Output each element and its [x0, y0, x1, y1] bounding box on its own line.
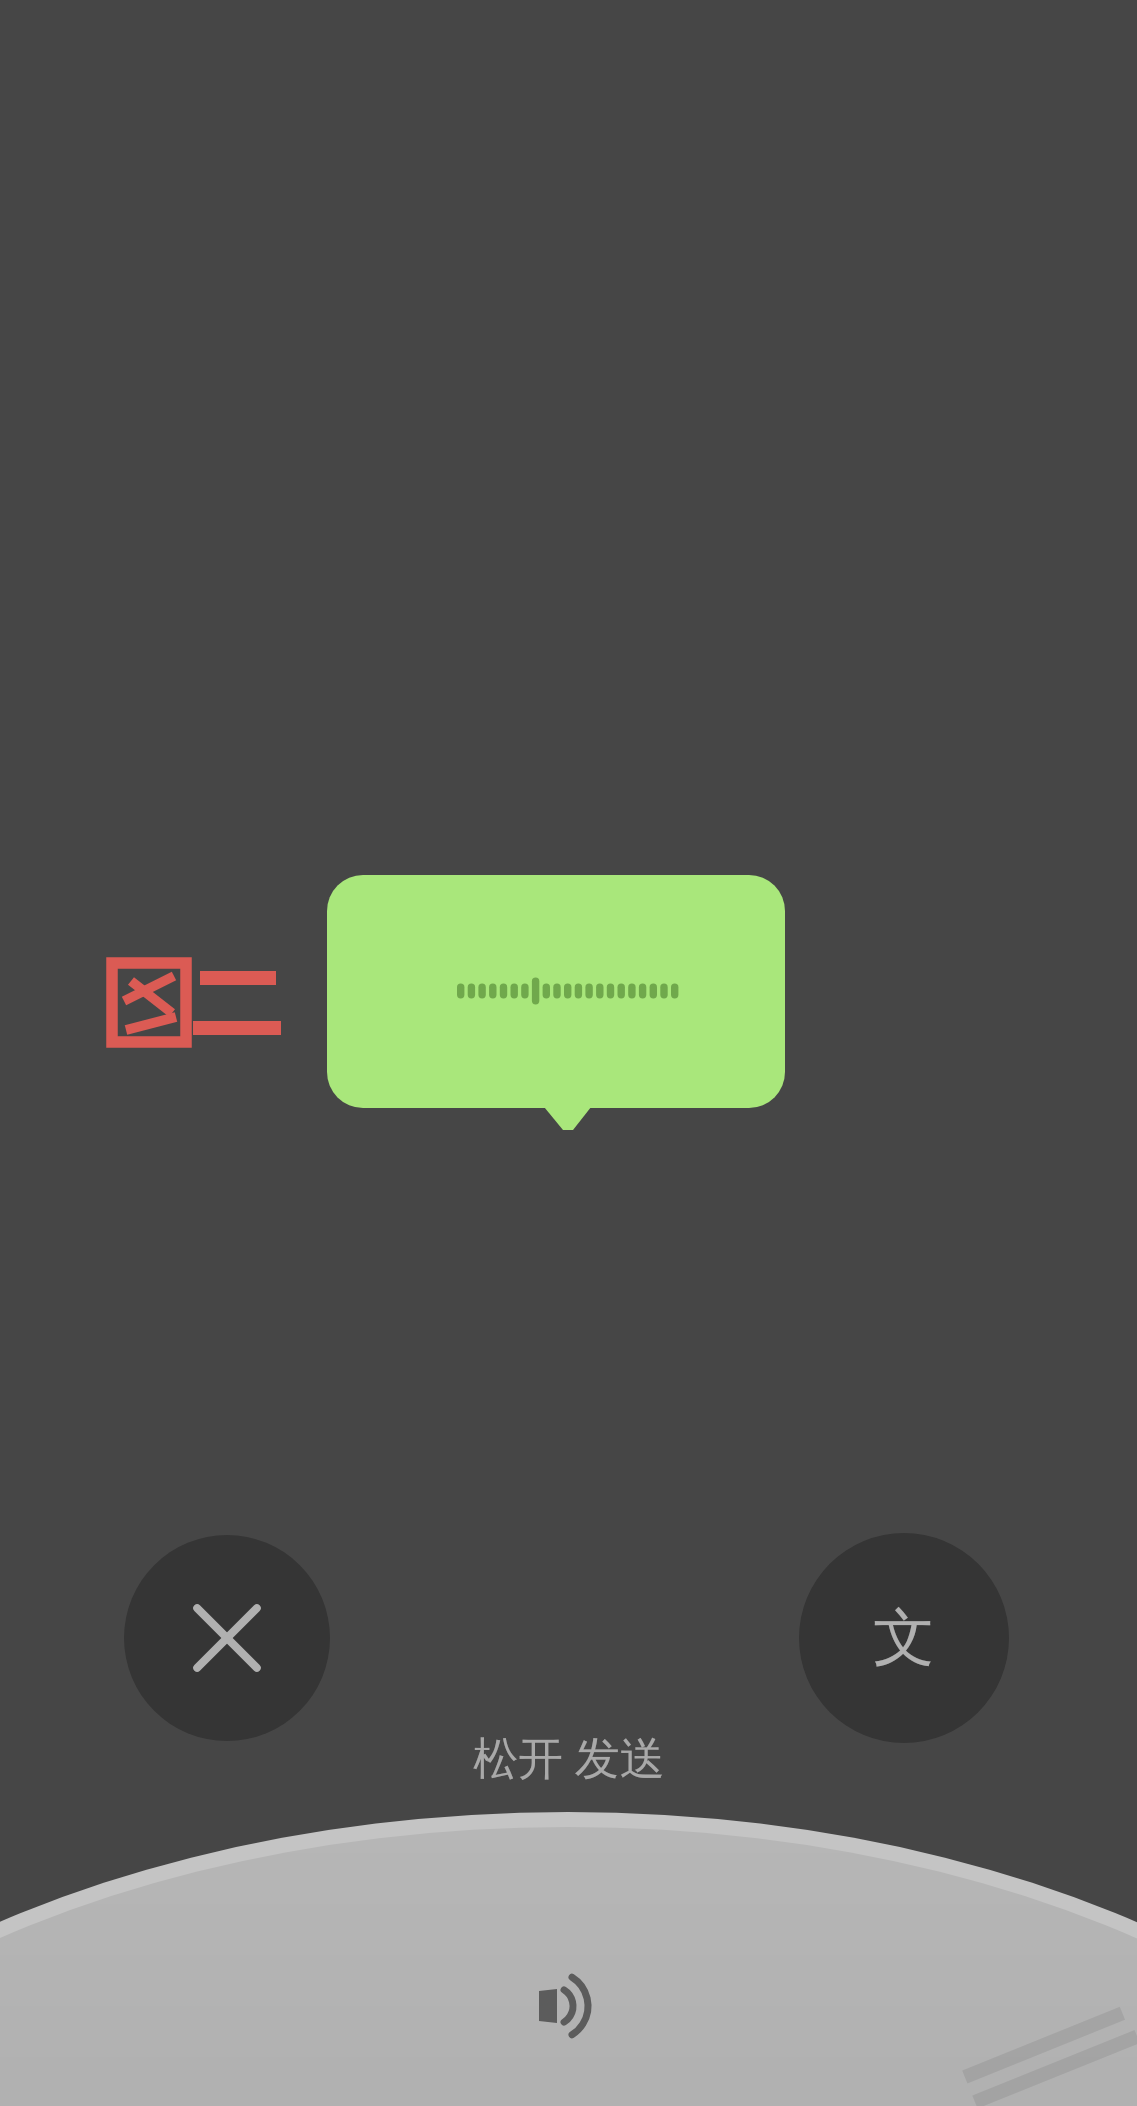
staticText: 文: [873, 1599, 935, 1677]
button[interactable]: Convert voice to text: [799, 1533, 1009, 1743]
button[interactable]: Cancel recording: [124, 1535, 330, 1741]
staticText: 松开 发送: [473, 1726, 665, 1784]
